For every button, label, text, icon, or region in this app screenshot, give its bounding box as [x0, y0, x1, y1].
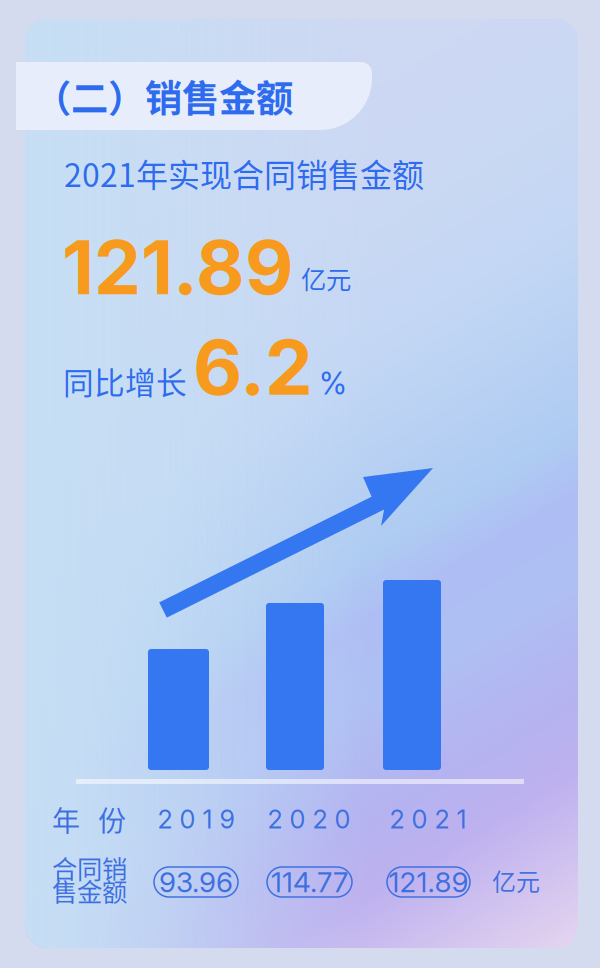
staticText: 2 0 2 0 — [267, 804, 350, 835]
staticText: 合同销 — [52, 849, 127, 886]
staticText: % — [319, 365, 347, 402]
staticText: 121.89 — [388, 865, 468, 899]
staticText: （二）销售金额 — [34, 69, 293, 123]
staticText: 售金额 — [52, 872, 127, 909]
staticText: 121.89 — [62, 222, 293, 312]
staticText: 年 份 — [52, 799, 126, 839]
staticText: 亿元 — [301, 260, 351, 296]
staticText: 2021年实现合同销售金额 — [64, 150, 424, 196]
staticText: 114.77 — [271, 865, 348, 899]
staticText: 93.96 — [159, 865, 233, 899]
staticText: 2 0 1 9 — [157, 804, 234, 835]
staticText: 2 0 2 1 — [389, 804, 466, 835]
staticText: 亿元 — [492, 863, 540, 898]
staticText: 同比增长 — [63, 359, 187, 403]
staticText: 6.2 — [193, 321, 313, 413]
